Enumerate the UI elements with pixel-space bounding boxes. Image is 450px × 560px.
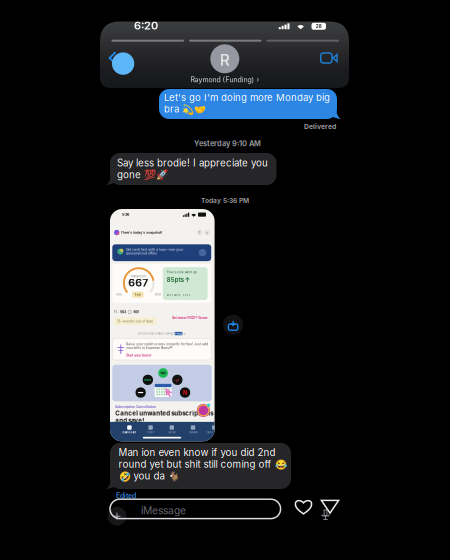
staticText: Get cash fast with a loan—see your perso… xyxy=(126,248,183,255)
staticText: Dashboard xyxy=(122,431,136,434)
staticText: Insurance xyxy=(188,431,197,434)
button[interactable]: R xyxy=(180,44,270,84)
staticText: Man ion even know if you did 2nd round y… xyxy=(118,447,286,482)
staticText: hulu xyxy=(144,378,151,381)
button[interactable]: iMessage xyxy=(110,499,281,519)
button[interactable]: Say less brodie! I appreciate you gone 💯… xyxy=(110,153,276,185)
button[interactable]: Like xyxy=(294,498,312,515)
staticText: Start your boost xyxy=(126,353,151,357)
staticText: Cards & Loans xyxy=(206,431,223,434)
staticText: Let's go I'm doing more Monday big bra 💫… xyxy=(164,92,330,115)
staticText: Fair xyxy=(135,293,141,296)
button[interactable]: Man ion even know if you did 2nd round y… xyxy=(110,443,291,489)
staticText: iMessage xyxy=(141,504,186,517)
button[interactable]: 5:36 xyxy=(110,209,215,441)
button[interactable]: Send xyxy=(320,499,339,514)
staticText: Today 5:36 PM xyxy=(201,196,249,204)
staticText: Here's today's snapshot! xyxy=(121,230,162,235)
staticText: Yesterday 9:10 AM xyxy=(194,139,261,148)
staticText: R xyxy=(220,51,230,69)
button[interactable]: FaceTime xyxy=(324,53,335,63)
staticText: Your score went up xyxy=(167,270,197,274)
staticText: 8 xyxy=(184,332,186,335)
staticText: 85pts ↑ xyxy=(167,276,190,283)
staticText: N xyxy=(183,389,187,396)
staticText: Edited xyxy=(116,491,136,500)
staticText: Cancel unwanted subscriptions and save! xyxy=(115,409,213,424)
staticText: Say less brodie! I appreciate you gone 💯… xyxy=(117,157,268,181)
staticText: as of Jan 10, 2025 xyxy=(167,294,191,297)
staticText: Subscription Cancellation xyxy=(115,405,156,409)
staticText: Get latest FICO® Score xyxy=(171,316,207,320)
staticText: 28 xyxy=(316,23,322,29)
staticText: Money xyxy=(168,431,175,434)
staticText: Scores calculated using xyxy=(138,332,173,335)
button[interactable]: Save attachment xyxy=(223,315,243,335)
staticText: Raise your credit scores instantly for f… xyxy=(126,342,208,350)
staticText: ? xyxy=(198,230,200,235)
staticText: 850 xyxy=(155,293,161,296)
staticText: TransUnion xyxy=(130,275,146,278)
staticText: 12+ months out of date xyxy=(117,320,153,323)
button[interactable]: Add attachment xyxy=(108,507,126,526)
staticText: FICO xyxy=(175,332,182,335)
staticText: 697 xyxy=(133,310,139,314)
staticText: 6:20 xyxy=(134,19,158,32)
staticText: Raymond (Funding) › xyxy=(190,75,259,84)
staticText: 300 xyxy=(116,293,122,296)
staticText: 563 xyxy=(120,310,126,314)
button[interactable]: Let's go I'm doing more Monday big bra 💫… xyxy=(159,89,337,119)
staticText: 5:36 xyxy=(122,212,129,217)
staticText: = xyxy=(206,230,208,235)
staticText: ✓ xyxy=(175,377,180,383)
staticText: Credit xyxy=(147,431,155,434)
staticText: 667 xyxy=(128,276,148,289)
staticText: FL xyxy=(114,310,118,314)
staticText: Delivered xyxy=(304,122,336,131)
button[interactable]: Back xyxy=(105,48,137,78)
